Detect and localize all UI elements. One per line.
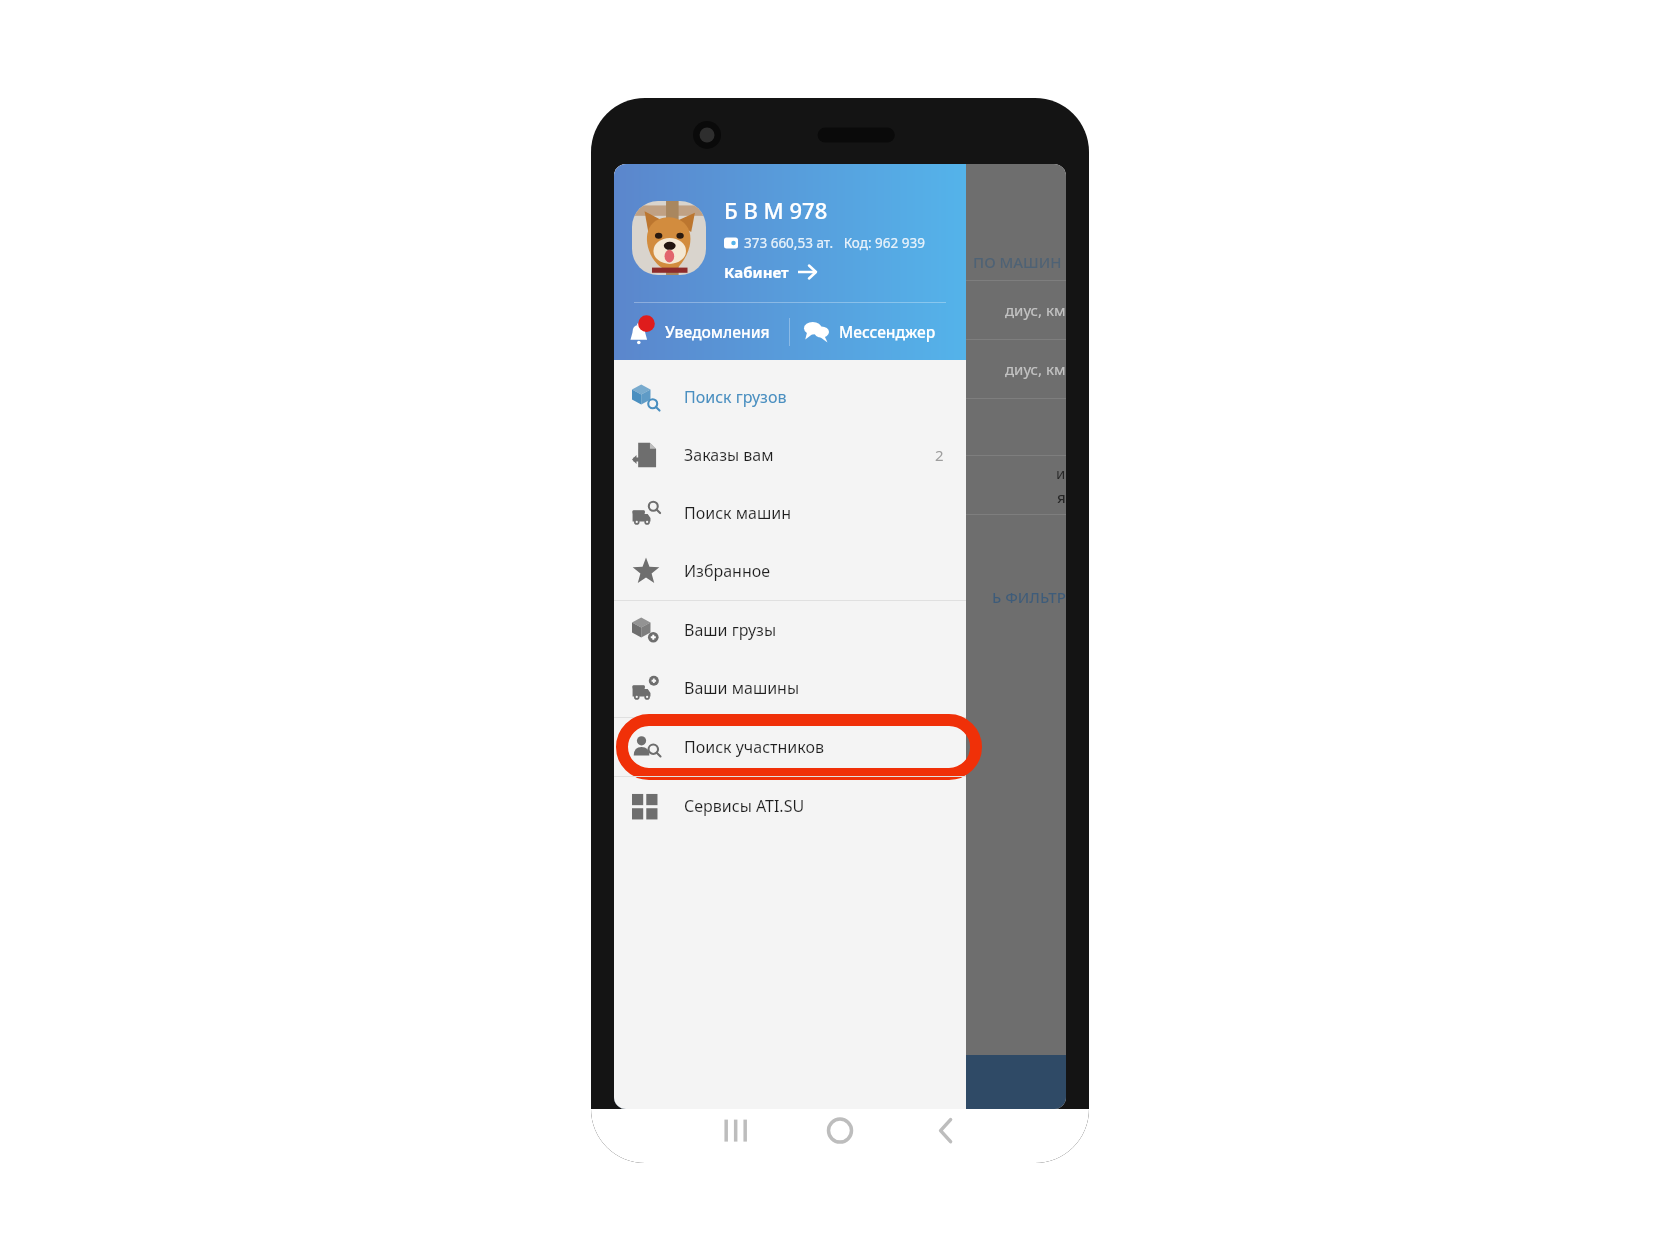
staticText: Ваши грузы [684, 619, 966, 641]
button[interactable]: Поиск машин [614, 484, 966, 542]
staticText: диус, км [1005, 359, 1066, 379]
button[interactable]: Кабинет [724, 262, 816, 282]
staticText: ПО МАШИН [973, 252, 1062, 272]
staticText: Б В М 978 [724, 195, 828, 225]
button[interactable]: Заказы вам [614, 426, 966, 484]
staticText: Избранное [684, 560, 966, 582]
staticText: Ь ФИЛЬТР [992, 587, 1066, 607]
staticText: Поиск участников [684, 736, 966, 758]
button[interactable]: Мессенджер [790, 303, 966, 360]
staticText: 373 660,53 ат. Код: 962 939 [744, 234, 925, 252]
button[interactable]: Поиск грузов [614, 368, 966, 426]
button[interactable]: Избранное [614, 542, 966, 600]
staticText: Ваши машины [684, 677, 966, 699]
staticText: Сервисы ATI.SU [684, 795, 966, 817]
staticText: Поиск машин [684, 502, 966, 524]
button[interactable]: Profile photo [632, 201, 706, 275]
button[interactable]: Поиск участников [614, 718, 966, 776]
staticText: Заказы вам [684, 444, 935, 466]
staticText: Уведомления [665, 321, 770, 342]
staticText: Поиск грузов [684, 386, 966, 408]
button[interactable]: Сервисы ATI.SU [614, 777, 966, 835]
staticText: я [1057, 487, 1066, 507]
staticText: Мессенджер [839, 321, 936, 342]
staticText: 2 [935, 445, 944, 465]
staticText: и [1056, 463, 1066, 483]
button[interactable]: Ваши машины [614, 659, 966, 717]
button[interactable]: Ваши грузы [614, 601, 966, 659]
button[interactable]: Уведомления [614, 303, 789, 360]
staticText: Кабинет [724, 262, 789, 282]
staticText: диус, км [1005, 300, 1066, 320]
